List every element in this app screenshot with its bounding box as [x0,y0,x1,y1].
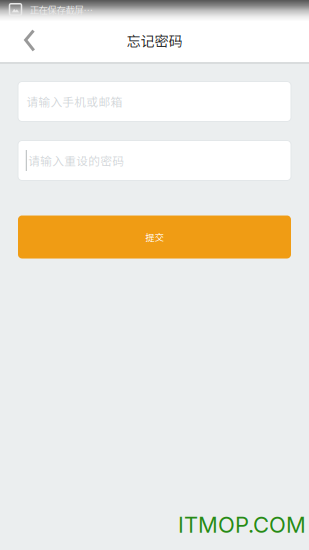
staticText: 正在保存截屏… [29,3,92,16]
staticText: 请输入手机或邮箱 [26,93,122,110]
staticText: 提交 [145,230,163,244]
staticText: ITMOP.COM [178,511,306,538]
staticText: 忘记密码 [126,30,182,51]
button[interactable]: 返回 [0,21,49,62]
button[interactable]: 提交 [18,215,291,258]
staticText: 请输入重设的密码 [28,152,124,169]
